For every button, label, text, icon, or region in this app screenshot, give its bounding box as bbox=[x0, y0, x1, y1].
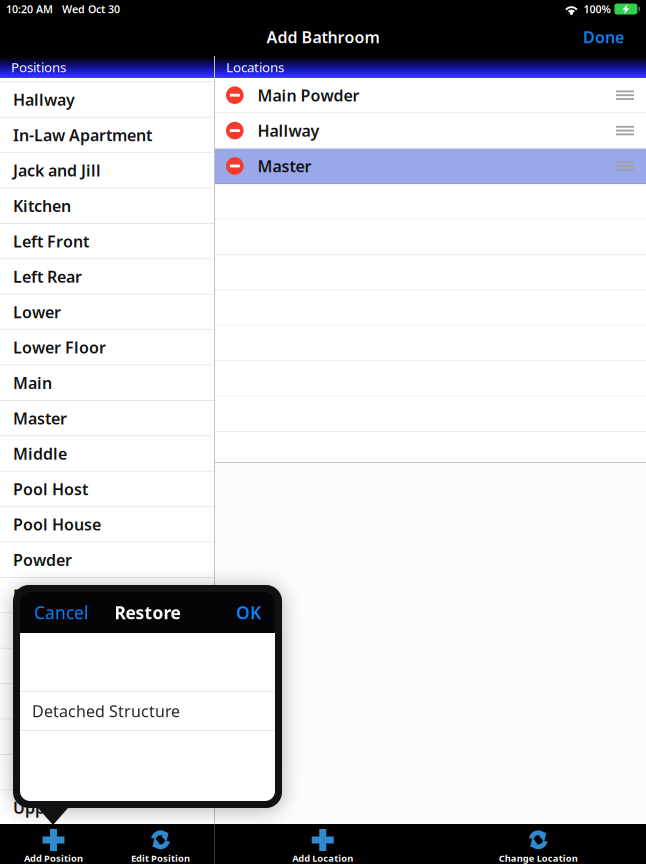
staticText: Add Position bbox=[24, 852, 83, 864]
button[interactable]: Main Powder bbox=[215, 78, 646, 113]
staticText: Locations bbox=[226, 58, 284, 76]
button[interactable]: Add Position bbox=[0, 824, 107, 864]
button[interactable]: Right Rear bbox=[0, 684, 214, 720]
button[interactable]: Edit Position bbox=[107, 824, 214, 864]
button[interactable]: Powder bbox=[0, 543, 214, 578]
staticText: Main Powder bbox=[258, 85, 360, 106]
button[interactable]: Right Front bbox=[0, 649, 214, 684]
staticText: Second bbox=[13, 726, 69, 747]
button[interactable]: Lower Floor bbox=[0, 330, 214, 366]
staticText: Studio bbox=[13, 762, 63, 783]
staticText: Middle bbox=[13, 443, 67, 464]
button[interactable]: Done bbox=[569, 19, 638, 55]
staticText: Detached Structure bbox=[32, 700, 180, 722]
staticText: Edit Position bbox=[131, 852, 190, 864]
staticText: Prime bbox=[13, 585, 59, 606]
staticText: 100% bbox=[583, 2, 610, 16]
staticText: Right Front bbox=[13, 655, 100, 677]
button[interactable]: Prime bbox=[0, 578, 214, 613]
staticText: Done bbox=[583, 26, 624, 48]
staticText: Restore bbox=[114, 601, 180, 624]
button[interactable]: Lower bbox=[0, 295, 214, 330]
button[interactable]: Upper bbox=[0, 790, 214, 826]
staticText: Positions bbox=[11, 58, 66, 76]
button[interactable]: Rear bbox=[0, 613, 214, 649]
staticText: OK bbox=[236, 601, 261, 624]
button[interactable]: Studio bbox=[0, 755, 214, 790]
staticText: Hallway bbox=[13, 89, 75, 110]
button[interactable]: Left Rear bbox=[0, 259, 214, 295]
button[interactable]: Master bbox=[0, 401, 214, 436]
button[interactable]: OK bbox=[230, 593, 267, 632]
button[interactable]: Kitchen bbox=[0, 189, 214, 224]
staticText: Left Rear bbox=[13, 266, 82, 287]
staticText: Jack and Jill bbox=[13, 160, 101, 181]
button[interactable]: Add Location bbox=[215, 824, 430, 864]
button[interactable]: Pool House bbox=[0, 507, 214, 543]
button[interactable]: Hallway bbox=[0, 82, 214, 118]
staticText: Master bbox=[258, 155, 312, 177]
button[interactable]: Pool Host bbox=[0, 472, 214, 507]
staticText: Lower bbox=[13, 301, 61, 323]
staticText: Lower Floor bbox=[13, 337, 106, 358]
staticText: Pool House bbox=[13, 514, 101, 535]
staticText: Add Bathroom bbox=[266, 26, 379, 48]
button[interactable]: Main bbox=[0, 366, 214, 401]
button[interactable]: Cancel bbox=[28, 593, 94, 632]
button[interactable]: Change Location bbox=[430, 824, 646, 864]
button[interactable]: Jack and Jill bbox=[0, 153, 214, 189]
button[interactable]: Left Front bbox=[0, 224, 214, 259]
staticText: Add Location bbox=[292, 852, 353, 864]
staticText: Rear bbox=[13, 620, 48, 641]
staticText: Kitchen bbox=[13, 195, 71, 216]
staticText: Powder bbox=[13, 549, 72, 570]
staticText: Right Rear bbox=[13, 691, 93, 712]
button[interactable]: Hallway bbox=[215, 113, 646, 149]
staticText: Upper bbox=[13, 797, 61, 818]
staticText: In-Law Apartment bbox=[13, 124, 152, 146]
button[interactable]: In-Law Apartment bbox=[0, 118, 214, 153]
staticText: Pool Host bbox=[13, 478, 88, 500]
staticText: Left Front bbox=[13, 231, 89, 252]
staticText: 10:20 AM bbox=[6, 2, 53, 16]
staticText: Master bbox=[13, 408, 67, 429]
staticText: Cancel bbox=[34, 601, 88, 624]
staticText: Hallway bbox=[258, 120, 320, 141]
button[interactable]: Master bbox=[215, 149, 646, 184]
button[interactable]: Second bbox=[0, 720, 214, 755]
staticText: Main bbox=[13, 372, 52, 393]
staticText: Wed Oct 30 bbox=[62, 2, 120, 16]
button[interactable]: Middle bbox=[0, 436, 214, 472]
staticText: Change Location bbox=[499, 852, 578, 864]
